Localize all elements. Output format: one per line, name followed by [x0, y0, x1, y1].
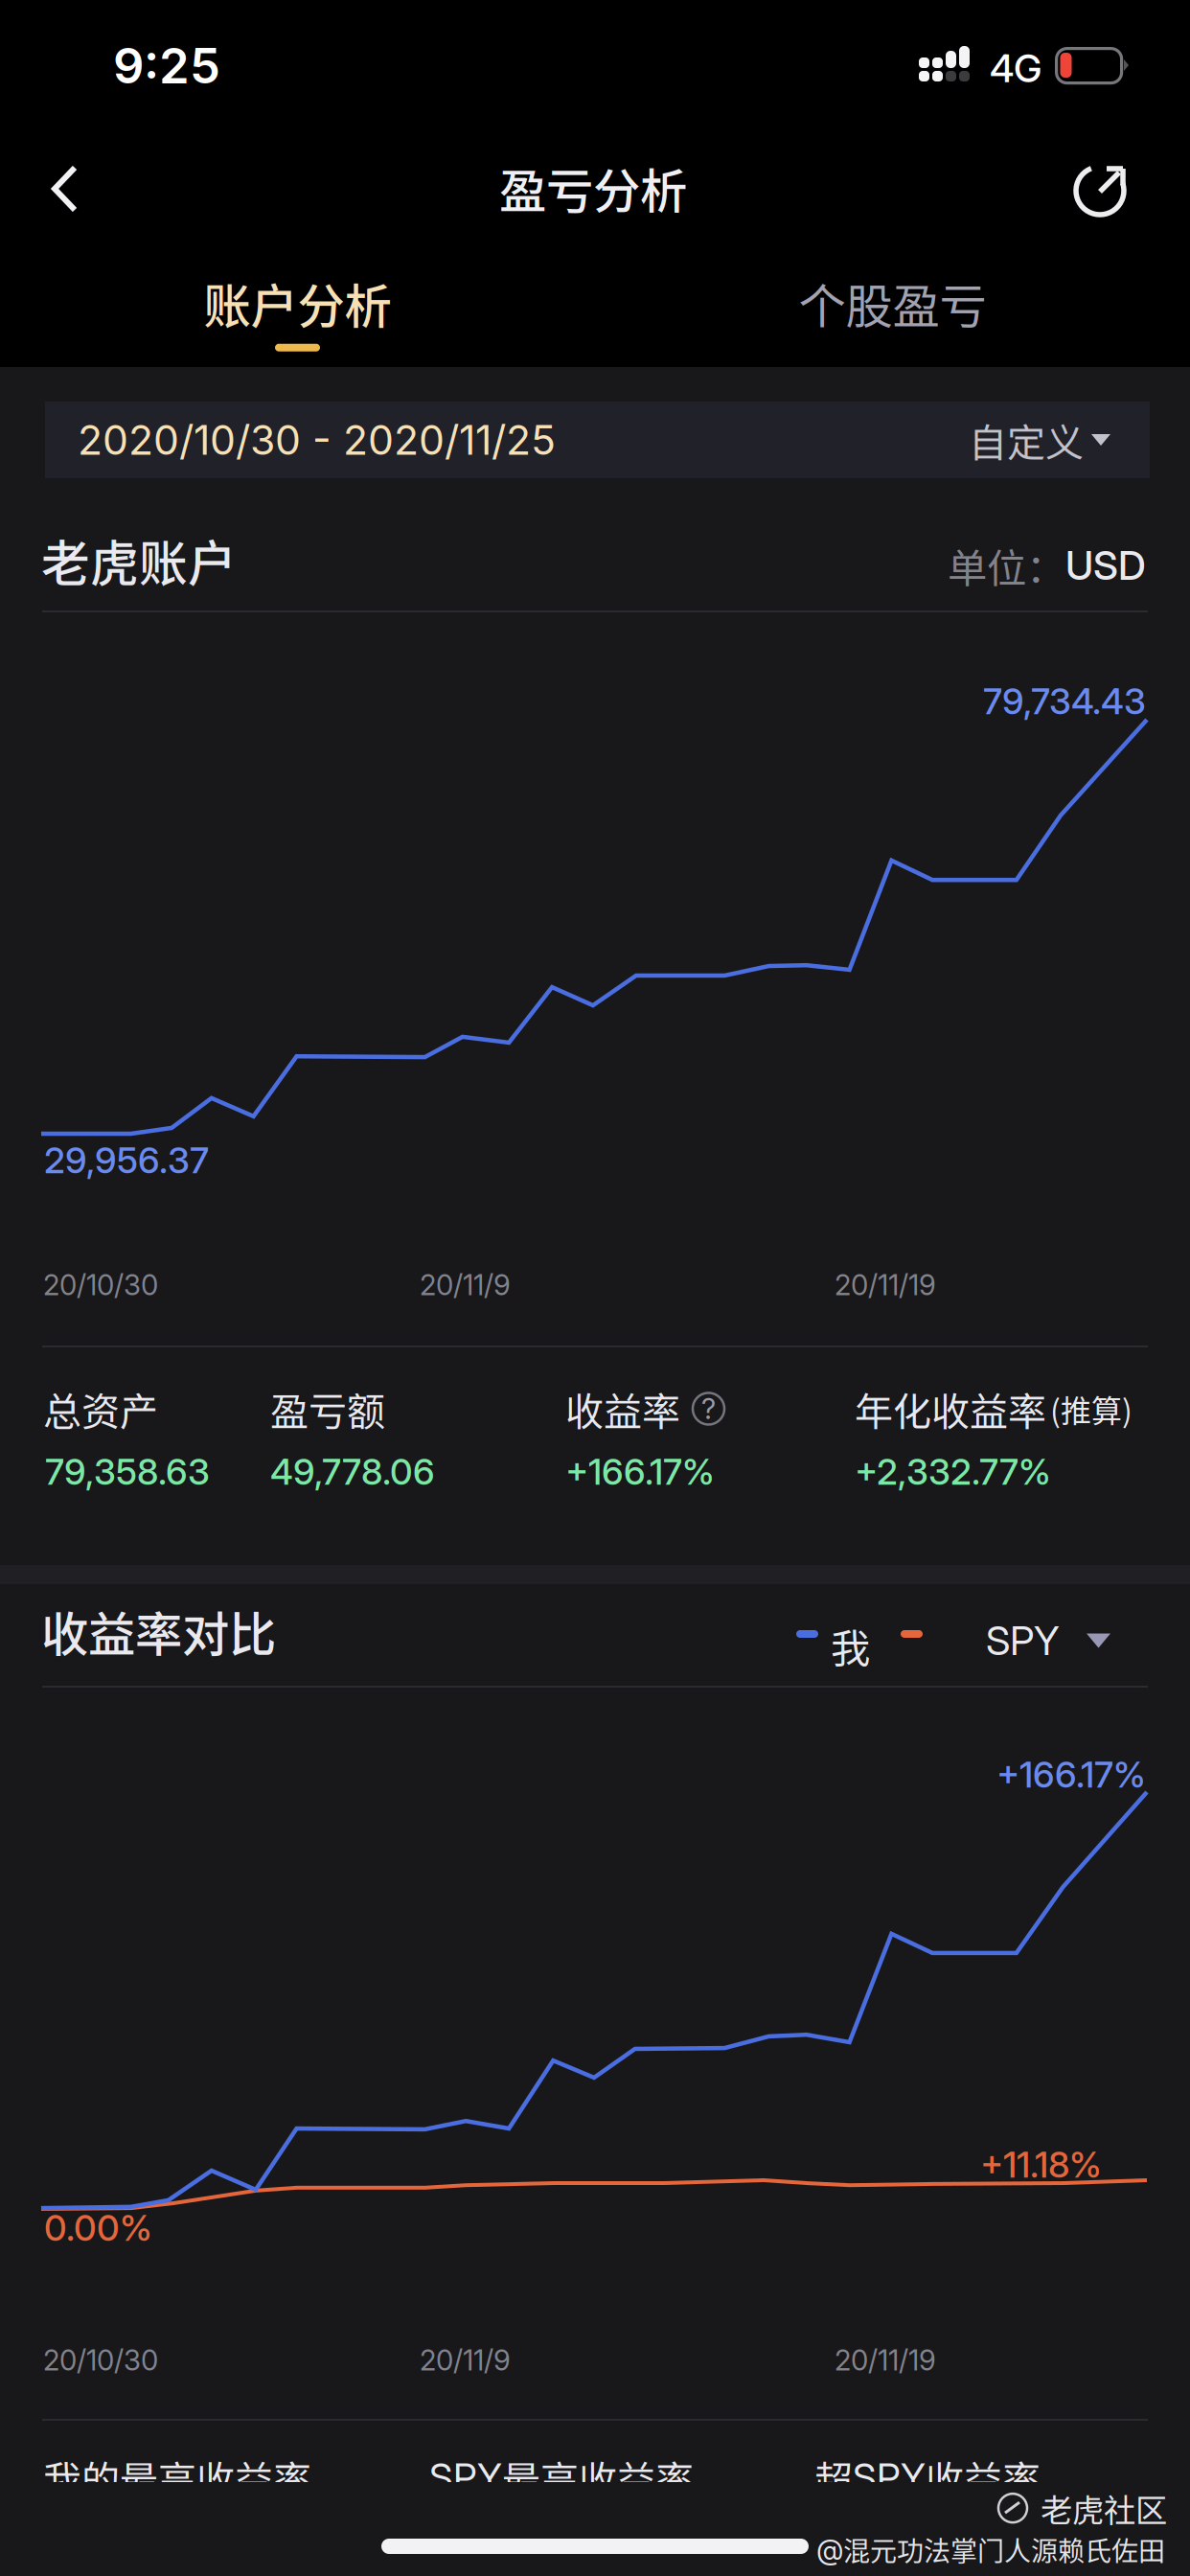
staticText: 混元功法掌门人源赖氏佐田 — [843, 2530, 1165, 2569]
staticText: 收益率 — [565, 1381, 680, 1436]
staticText: 29,956.37 — [44, 1138, 209, 1182]
button[interactable]: 个股盈亏 — [595, 265, 1190, 355]
staticText: 老虎账户 — [41, 525, 237, 596]
staticText: 我 — [831, 1617, 870, 1674]
staticText: 我的最高收益率 — [43, 2449, 311, 2505]
button[interactable]: 2020/10/30 - 2020/11/25 — [45, 402, 1150, 478]
staticText: @ — [816, 2532, 843, 2566]
staticText: +166.17% — [996, 1753, 1146, 1796]
staticText: ? — [701, 1392, 716, 1426]
staticText: 20/11/19 — [835, 1268, 936, 1302]
button[interactable]: 账户分析 — [0, 265, 595, 355]
staticText: SPY — [986, 1617, 1060, 1665]
staticText: 超 — [814, 2449, 853, 2505]
staticText: 4G — [990, 45, 1041, 91]
staticText: 年化收益率 — [855, 1381, 1046, 1436]
staticText: 49,778.06 — [270, 1450, 435, 1493]
staticText: 最高收益率 — [502, 2449, 694, 2505]
staticText: 单位： — [948, 537, 1065, 594]
button[interactable]: Share — [1058, 147, 1146, 235]
staticText: 账户分析 — [204, 269, 391, 337]
staticText: 20/10/30 — [43, 2343, 158, 2377]
staticText: 20/10/30 — [43, 1268, 158, 1302]
staticText: +166.17% — [565, 1450, 715, 1493]
staticText: 20/11/9 — [420, 1268, 511, 1302]
staticText: 79,734.43 — [983, 679, 1146, 723]
staticText: 个股盈亏 — [799, 269, 986, 337]
staticText: 79,358.63 — [45, 1450, 210, 1493]
staticText: 盈亏额 — [270, 1381, 385, 1436]
staticText: 0.00% — [44, 2206, 152, 2249]
staticText: 2020/10/30 - 2020/11/25 — [78, 415, 556, 465]
button[interactable]: SPY — [986, 1617, 1110, 1665]
staticText: (推算) — [1050, 1387, 1133, 1431]
staticText: 收益率对比 — [41, 1597, 276, 1665]
staticText: 9:25 — [113, 36, 220, 95]
staticText: 收益率 — [926, 2449, 1041, 2505]
staticText: 20/11/19 — [835, 2343, 936, 2377]
staticText: +11.18% — [980, 2143, 1102, 2186]
staticText: 自定义 — [969, 412, 1084, 468]
staticText: +2,332.77% — [855, 1450, 1051, 1493]
staticText: 总资产 — [43, 1381, 158, 1436]
staticText: 20/11/9 — [420, 2343, 511, 2377]
staticText: 盈亏分析 — [499, 153, 687, 222]
staticText: SPY — [429, 2454, 502, 2500]
staticText: USD — [1065, 541, 1146, 589]
staticText: SPY — [853, 2454, 926, 2500]
staticText: 老虎社区 — [1041, 2485, 1167, 2531]
button[interactable]: Back — [28, 146, 102, 232]
